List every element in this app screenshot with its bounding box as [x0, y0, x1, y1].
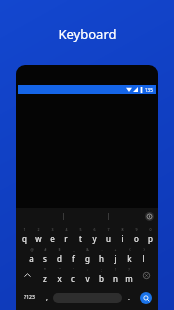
staticText: x	[57, 273, 62, 284]
staticText: w	[35, 233, 42, 244]
button[interactable]: 5	[73, 225, 87, 245]
staticText: #	[44, 247, 47, 252]
staticText: ,	[46, 293, 48, 303]
staticText: h	[99, 253, 104, 264]
staticText: 2	[37, 227, 40, 232]
staticText: :	[87, 267, 88, 272]
staticText: +	[114, 247, 117, 252]
button[interactable]: Space	[53, 293, 122, 303]
button[interactable]: 2	[31, 225, 45, 245]
staticText: 0	[149, 227, 152, 232]
staticText: ?123	[24, 294, 35, 301]
staticText: d	[57, 253, 62, 264]
button[interactable]: 3	[45, 225, 59, 245]
button[interactable]: '	[66, 265, 80, 285]
staticText: "	[59, 267, 61, 272]
button[interactable]: More options	[145, 212, 154, 221]
staticText: -	[101, 247, 103, 252]
staticText: i	[121, 233, 124, 244]
button[interactable]: !	[108, 265, 122, 285]
button[interactable]: ,	[40, 287, 53, 308]
button[interactable]: Search	[140, 292, 152, 304]
staticText: s	[43, 253, 47, 264]
button[interactable]: &	[80, 245, 94, 265]
staticText: .	[128, 293, 130, 303]
staticText: 9	[135, 227, 138, 232]
staticText: g	[85, 253, 90, 264]
staticText: *	[44, 267, 46, 272]
staticText: c	[71, 273, 75, 284]
button[interactable]: ;	[94, 265, 108, 285]
staticText: y	[92, 233, 97, 244]
button[interactable]: 7	[101, 225, 115, 245]
staticText: 5	[79, 227, 82, 232]
staticText: o	[134, 233, 139, 244]
staticText: 6	[93, 227, 96, 232]
staticText: (	[129, 247, 131, 252]
staticText: ?	[128, 267, 130, 272]
button[interactable]: ?	[122, 265, 136, 285]
button[interactable]: ?123	[18, 287, 40, 308]
button[interactable]: 4	[59, 225, 73, 245]
staticText: b	[99, 273, 104, 284]
button[interactable]: Backspace	[136, 265, 157, 285]
staticText: !	[115, 267, 116, 272]
button[interactable]: 8	[115, 225, 129, 245]
button[interactable]: 1	[17, 225, 31, 245]
staticText: q	[22, 233, 27, 244]
staticText: 4	[65, 227, 68, 232]
staticText: 8	[121, 227, 124, 232]
staticText: p	[148, 233, 153, 244]
button[interactable]: 0	[143, 225, 157, 245]
button[interactable]: +	[108, 245, 122, 265]
staticText: r	[64, 233, 68, 244]
staticText: 3	[51, 227, 54, 232]
staticText: f	[72, 253, 75, 264]
staticText: )	[143, 247, 145, 252]
button[interactable]: *	[38, 265, 52, 285]
button[interactable]: #	[38, 245, 52, 265]
button[interactable]: _	[66, 245, 80, 265]
staticText: j	[114, 253, 117, 264]
button[interactable]: )	[136, 245, 150, 265]
button[interactable]: 6	[87, 225, 101, 245]
staticText: @	[30, 247, 34, 252]
staticText: z	[43, 273, 47, 284]
staticText: ;	[101, 267, 102, 272]
button[interactable]: (	[122, 245, 136, 265]
button[interactable]: 9	[129, 225, 143, 245]
staticText: &	[86, 247, 89, 252]
staticText: _	[73, 247, 75, 252]
button[interactable]: "	[52, 265, 66, 285]
button[interactable]: .	[122, 287, 135, 308]
button[interactable]: @	[24, 245, 38, 265]
staticText: e	[50, 233, 55, 244]
staticText: u	[106, 233, 111, 244]
button[interactable]: $	[52, 245, 66, 265]
staticText: Keyboard	[58, 25, 117, 43]
staticText: '	[73, 267, 74, 272]
staticText: 135	[145, 87, 153, 93]
button[interactable]: :	[80, 265, 94, 285]
staticText: t	[79, 233, 82, 244]
staticText: n	[113, 273, 118, 284]
staticText: 1	[23, 227, 26, 232]
staticText: m	[125, 273, 133, 284]
button[interactable]: -	[94, 245, 108, 265]
staticText: $	[58, 247, 61, 252]
staticText: a	[29, 253, 34, 264]
staticText: 7	[107, 227, 110, 232]
button[interactable]: Shift	[17, 265, 38, 285]
staticText: l	[142, 253, 145, 264]
staticText: v	[85, 273, 90, 284]
staticText: k	[127, 253, 132, 264]
